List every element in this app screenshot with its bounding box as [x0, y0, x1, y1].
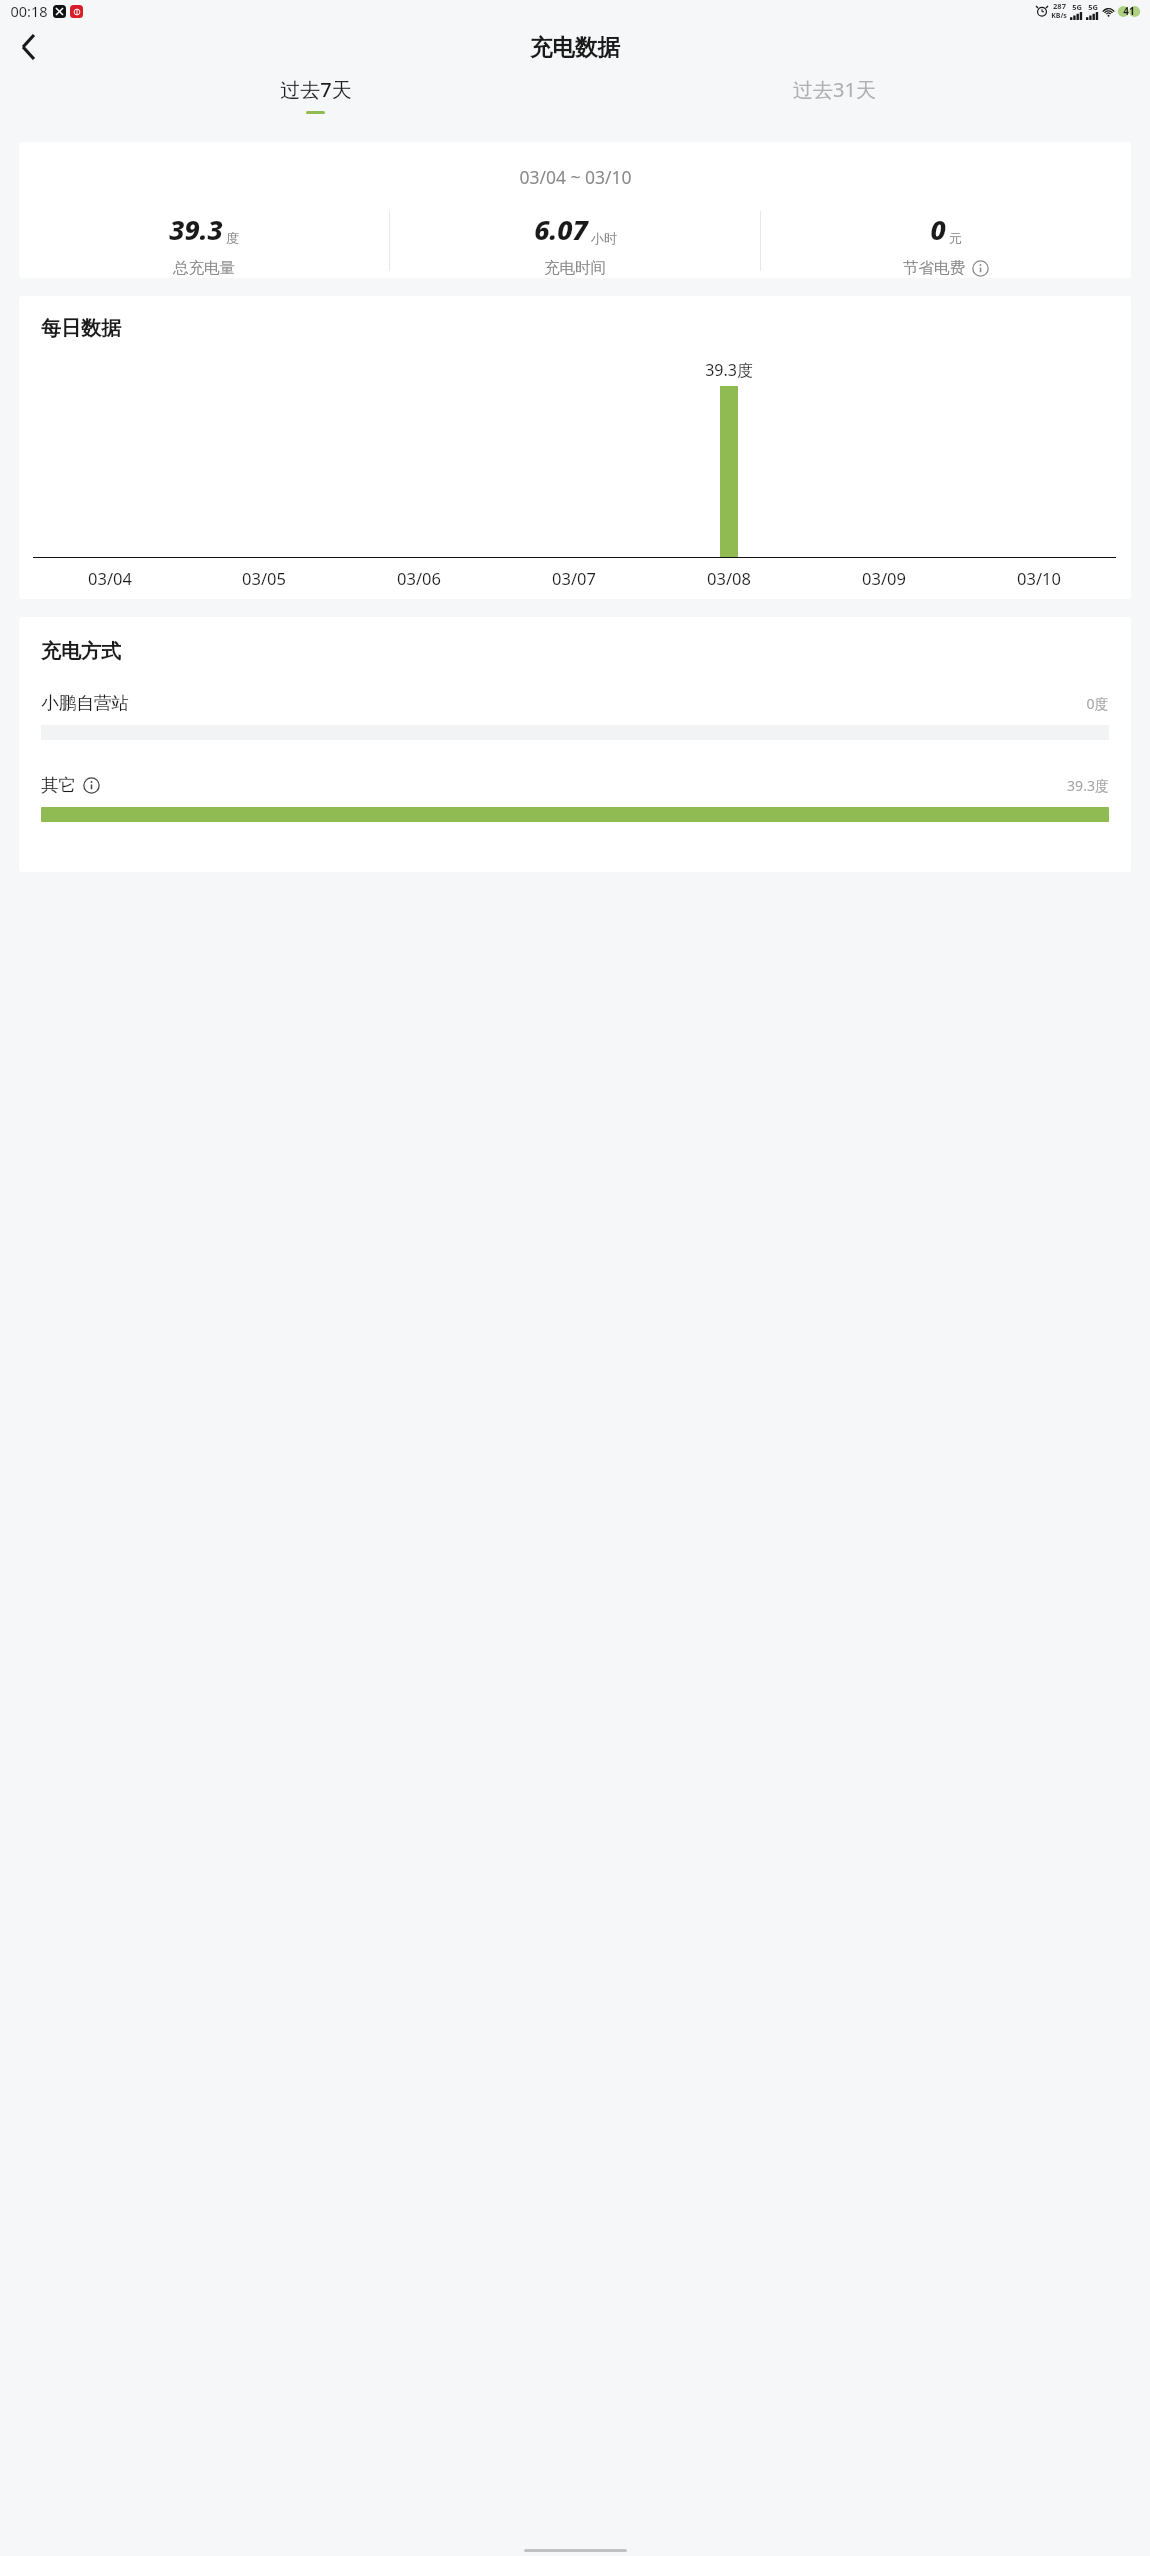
button[interactable]: 过去31天 — [575, 72, 1094, 122]
button[interactable]: 说明 — [971, 259, 990, 278]
button[interactable]: 说明 — [82, 776, 101, 795]
button[interactable]: 过去7天 — [56, 72, 575, 122]
staticText: 元 — [949, 230, 962, 246]
staticText: 节省电费 — [903, 258, 965, 278]
staticText: 03/07 — [552, 567, 596, 589]
staticText: 00:18 — [10, 1, 48, 21]
staticText: 过去31天 — [793, 76, 876, 103]
staticText: 总充电量 — [173, 258, 235, 278]
staticText: 充电方式 — [41, 639, 121, 664]
staticText: 03/08 — [707, 567, 751, 589]
staticText: 03/10 — [1017, 567, 1061, 589]
staticText: 5G — [1088, 2, 1098, 12]
staticText: 其它 — [41, 774, 76, 796]
staticText: 41 — [1123, 4, 1135, 18]
staticText: 每日数据 — [41, 316, 121, 341]
staticText: 39.3 — [169, 211, 223, 248]
staticText: 03/06 — [397, 567, 441, 589]
staticText: 过去7天 — [280, 76, 352, 103]
staticText: KB/s — [1051, 11, 1067, 21]
staticText: 度 — [226, 230, 239, 246]
staticText: 03/05 — [242, 567, 286, 589]
staticText: 03/04 — [88, 567, 132, 589]
staticText: 0 — [930, 211, 946, 248]
staticText: 03/09 — [862, 567, 906, 589]
staticText: 充电时间 — [544, 258, 606, 278]
staticText: 小时 — [591, 230, 617, 246]
staticText: 03/04 ~ 03/10 — [519, 165, 632, 189]
staticText: 287 — [1053, 1, 1066, 11]
staticText: 0度 — [1086, 694, 1109, 713]
staticText: 5G — [1072, 2, 1082, 12]
staticText: 小鹏自营站 — [41, 692, 129, 714]
button[interactable]: Back — [8, 27, 48, 67]
staticText: 6.07 — [534, 211, 588, 248]
staticText: 39.3度 — [705, 359, 753, 381]
staticText: 充电数据 — [530, 33, 620, 61]
staticText: 39.3度 — [1067, 776, 1109, 795]
